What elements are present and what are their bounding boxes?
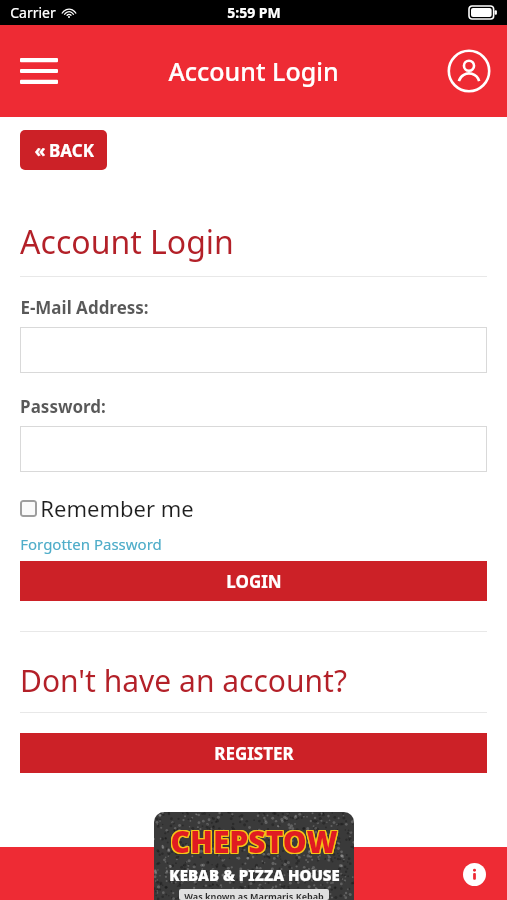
button[interactable]: Menu bbox=[12, 44, 66, 98]
staticText: LOGIN bbox=[226, 570, 282, 593]
button[interactable]: Account bbox=[443, 45, 495, 97]
button[interactable]: Forgotten Password bbox=[20, 534, 162, 554]
button[interactable] bbox=[20, 426, 487, 472]
staticText: Password: bbox=[20, 395, 106, 418]
staticText: KEBAB & PIZZA HOUSE bbox=[169, 865, 340, 885]
staticText: Remember me bbox=[40, 493, 194, 523]
staticText: 5:59 PM bbox=[227, 3, 281, 22]
staticText: Forgotten Password bbox=[20, 534, 162, 554]
staticText: CHEPSTOW bbox=[170, 821, 338, 862]
button[interactable]: REGISTER bbox=[20, 733, 487, 773]
staticText: E-Mail Address: bbox=[20, 296, 149, 319]
staticText: CHEPSTOW bbox=[170, 820, 338, 861]
staticText: CHEPSTOW bbox=[169, 820, 337, 861]
staticText: CHEPSTOW bbox=[171, 821, 339, 862]
button[interactable]: LOGIN bbox=[20, 561, 487, 601]
staticText: CHEPSTOW bbox=[170, 822, 338, 863]
staticText: CHEPSTOW bbox=[171, 820, 339, 861]
staticText: CHEPSTOW bbox=[171, 822, 339, 863]
staticText: CHEPSTOW bbox=[169, 822, 337, 863]
staticText: BACK bbox=[49, 139, 94, 162]
staticText: Account Login bbox=[168, 54, 339, 88]
button[interactable] bbox=[20, 327, 487, 373]
button[interactable]: Chepstow Kebab & Pizza House logo bbox=[154, 812, 354, 900]
staticText: « bbox=[34, 138, 46, 163]
staticText: CHEPSTOW bbox=[169, 821, 337, 862]
staticText: Don't have an account? bbox=[20, 660, 347, 701]
staticText: Account Login bbox=[20, 220, 234, 264]
staticText: REGISTER bbox=[214, 742, 294, 765]
button[interactable]: Information bbox=[459, 859, 489, 889]
staticText: Carrier bbox=[10, 3, 56, 22]
button[interactable]: Remember me bbox=[20, 493, 194, 523]
button[interactable]: « bbox=[20, 130, 107, 170]
staticText: Was known as Marmaris Kebab bbox=[184, 890, 324, 899]
